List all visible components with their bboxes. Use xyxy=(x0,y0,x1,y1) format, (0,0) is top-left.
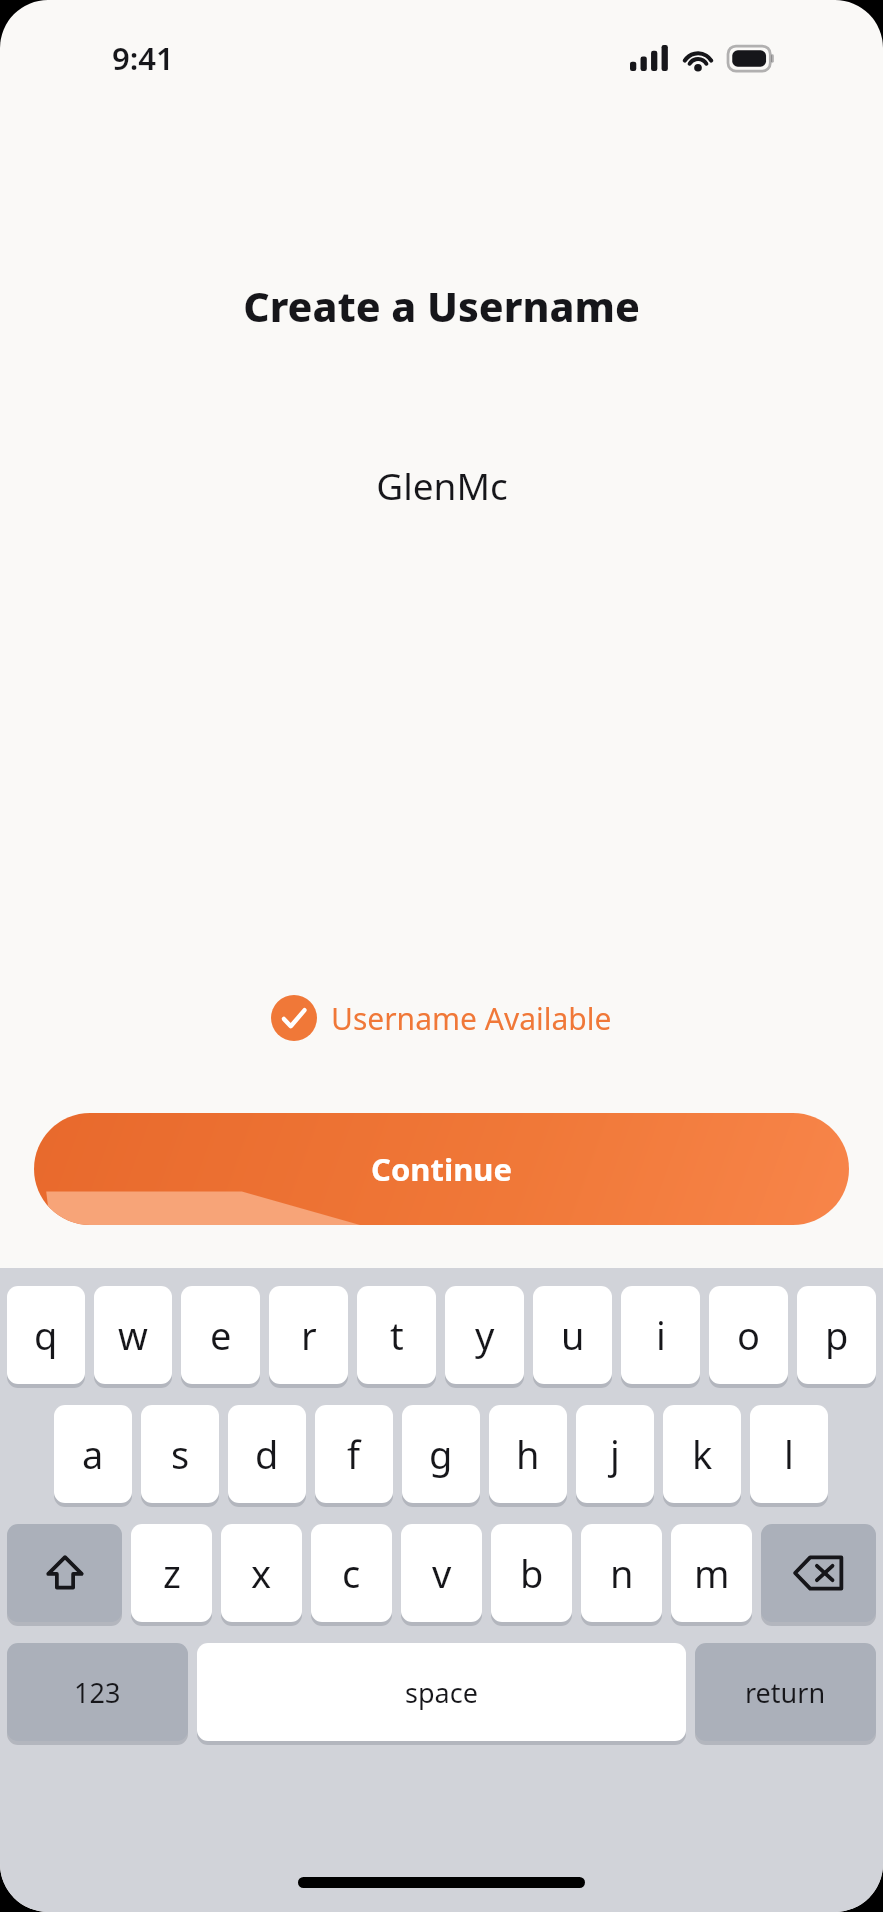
button[interactable]: g xyxy=(402,1405,480,1503)
staticText: i xyxy=(656,1309,666,1361)
button[interactable]: p xyxy=(797,1286,876,1384)
staticText: Create a Username xyxy=(243,278,640,334)
staticText: 123 xyxy=(74,1674,121,1711)
staticText: p xyxy=(825,1309,849,1361)
button[interactable]: z xyxy=(131,1524,212,1622)
staticText: m xyxy=(694,1547,730,1599)
staticText: t xyxy=(390,1309,404,1361)
staticText: g xyxy=(429,1428,453,1480)
button[interactable]: h xyxy=(489,1405,567,1503)
button[interactable]: i xyxy=(621,1286,700,1384)
staticText: c xyxy=(342,1547,361,1599)
staticText: h xyxy=(516,1428,540,1480)
button[interactable]: k xyxy=(663,1405,741,1503)
button[interactable]: t xyxy=(357,1286,436,1384)
button[interactable]: return xyxy=(695,1643,876,1741)
staticText: a xyxy=(82,1428,104,1480)
button[interactable]: d xyxy=(228,1405,306,1503)
staticText: GlenMc xyxy=(376,460,508,510)
staticText: b xyxy=(520,1547,544,1599)
staticText: r xyxy=(301,1309,317,1361)
button[interactable]: Continue xyxy=(34,1113,849,1225)
staticText: n xyxy=(610,1547,634,1599)
button[interactable]: n xyxy=(581,1524,662,1622)
staticText: l xyxy=(784,1428,794,1480)
staticText: u xyxy=(561,1309,585,1361)
button[interactable]: r xyxy=(269,1286,348,1384)
button[interactable]: q xyxy=(7,1286,85,1384)
staticText: f xyxy=(347,1428,361,1480)
button[interactable]: j xyxy=(576,1405,654,1503)
staticText: Username Available xyxy=(331,998,612,1039)
staticText: Continue xyxy=(371,1148,512,1190)
button[interactable]: Backspace xyxy=(761,1524,876,1622)
staticText: o xyxy=(737,1309,760,1361)
button[interactable]: Shift xyxy=(7,1524,122,1622)
staticText: y xyxy=(475,1309,495,1361)
staticText: z xyxy=(163,1547,181,1599)
button[interactable]: c xyxy=(311,1524,392,1622)
staticText: d xyxy=(255,1428,279,1480)
staticText: x xyxy=(251,1547,272,1599)
button[interactable]: b xyxy=(491,1524,572,1622)
staticText: w xyxy=(118,1309,148,1361)
staticText: v xyxy=(432,1547,452,1599)
button[interactable]: s xyxy=(141,1405,219,1503)
staticText: return xyxy=(745,1674,826,1711)
staticText: j xyxy=(610,1428,620,1480)
button[interactable]: m xyxy=(671,1524,752,1622)
button[interactable]: w xyxy=(94,1286,172,1384)
staticText: s xyxy=(171,1428,190,1480)
button[interactable]: v xyxy=(401,1524,482,1622)
button[interactable]: o xyxy=(709,1286,788,1384)
button[interactable]: l xyxy=(750,1405,828,1503)
staticText: space xyxy=(405,1674,478,1711)
button[interactable]: y xyxy=(445,1286,524,1384)
staticText: k xyxy=(692,1428,713,1480)
button[interactable]: x xyxy=(221,1524,302,1622)
button[interactable]: a xyxy=(54,1405,132,1503)
button[interactable]: f xyxy=(315,1405,393,1503)
button[interactable]: 123 xyxy=(7,1643,188,1741)
staticText: q xyxy=(34,1309,58,1361)
staticText: 9:41 xyxy=(112,37,174,79)
button[interactable]: e xyxy=(181,1286,260,1384)
button[interactable]: u xyxy=(533,1286,612,1384)
staticText: e xyxy=(210,1309,232,1361)
button[interactable]: space xyxy=(197,1643,686,1741)
